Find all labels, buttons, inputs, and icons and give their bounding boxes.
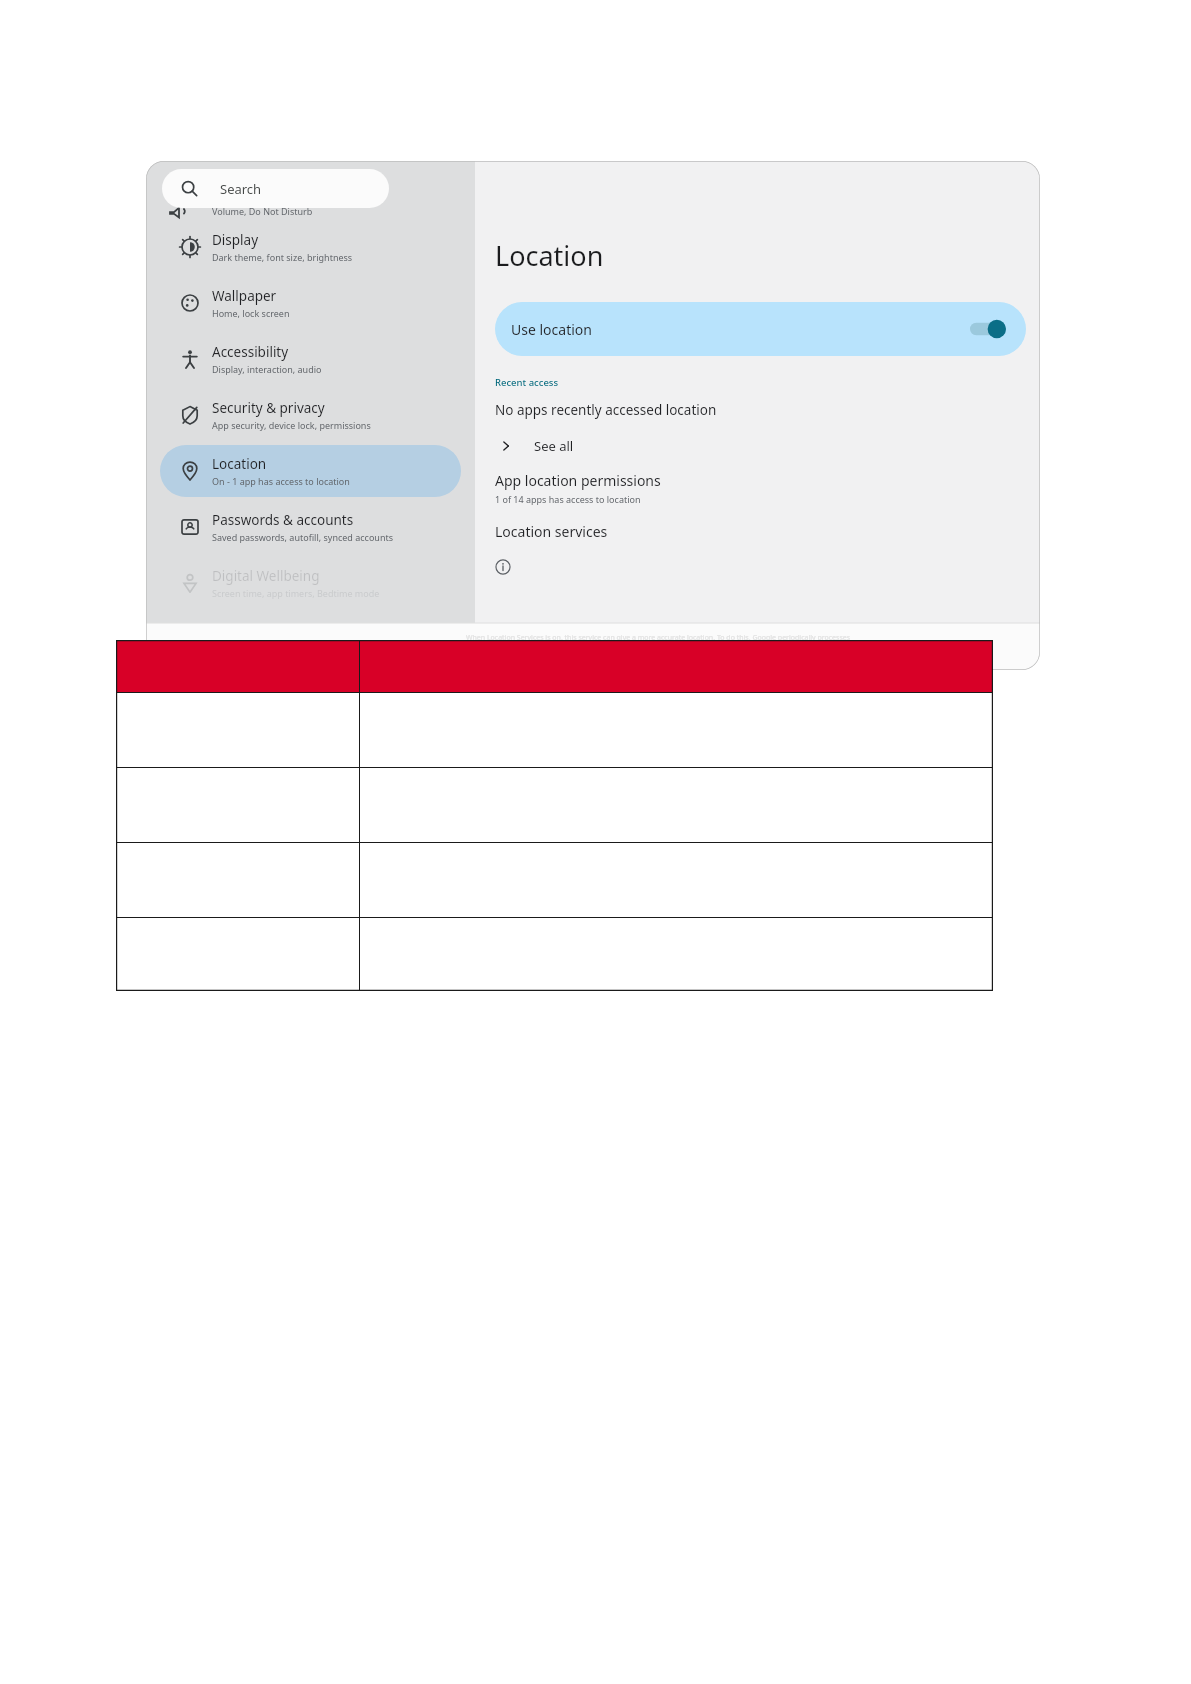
staticText: Volume, Do Not Disturb — [212, 205, 313, 217]
staticText: App security, device lock, permissions — [212, 419, 371, 431]
button[interactable]: Passwords & accounts — [160, 501, 461, 553]
button[interactable]: No apps recently accessed location — [495, 401, 1026, 419]
button[interactable]: Wallpaper — [160, 277, 461, 329]
button[interactable]: Recents — [594, 641, 614, 661]
button[interactable]: Accessibility — [160, 333, 461, 385]
staticText: Location — [212, 455, 267, 473]
staticText: Recent access — [495, 376, 559, 389]
button[interactable]: Information — [495, 559, 511, 575]
staticText: Display — [212, 231, 259, 249]
staticText: Digital Wellbeing — [212, 567, 320, 585]
button[interactable]: Home — [536, 641, 556, 661]
staticText: No apps recently accessed location — [495, 401, 717, 419]
staticText: Wallpaper — [212, 287, 277, 305]
staticText: 1 of 14 apps has access to location — [495, 493, 641, 505]
button[interactable] — [360, 693, 993, 767]
staticText: Search — [220, 180, 262, 198]
button[interactable] — [116, 640, 359, 692]
staticText: Dark theme, font size, brightness — [212, 251, 353, 263]
staticText: When Location Services is on, this servi… — [466, 633, 851, 643]
button[interactable] — [360, 768, 993, 842]
button[interactable] — [360, 843, 993, 917]
staticText: On - 1 app has access to location — [212, 475, 350, 487]
button[interactable] — [116, 768, 359, 842]
staticText: Passwords & accounts — [212, 511, 354, 529]
button[interactable] — [360, 918, 993, 991]
button[interactable]: See all — [495, 433, 1026, 459]
staticText: App location permissions — [495, 471, 661, 490]
button[interactable]: Location — [160, 445, 461, 497]
button[interactable] — [116, 843, 359, 917]
staticText: Screen time, app timers, Bedtime mode — [212, 587, 380, 599]
button[interactable]: Back — [478, 640, 500, 662]
staticText: Saved passwords, autofill, synced accoun… — [212, 531, 394, 543]
button[interactable]: Display — [160, 221, 461, 273]
button[interactable]: App location permissions — [495, 471, 1026, 505]
staticText: Display, interaction, audio — [212, 363, 322, 375]
staticText: Accessibility — [212, 343, 289, 361]
button[interactable]: Digital Wellbeing — [160, 557, 461, 609]
button[interactable] — [116, 693, 359, 767]
button[interactable]: Location services — [495, 522, 1026, 541]
staticText: Location — [495, 237, 604, 274]
button[interactable]: Volume, Do Not Disturb — [146, 193, 475, 219]
button[interactable]: Security & privacy — [160, 389, 461, 441]
button[interactable] — [116, 918, 359, 991]
staticText: Home, lock screen — [212, 307, 290, 319]
staticText: Location services — [495, 522, 608, 541]
staticText: Use location — [511, 320, 592, 339]
button[interactable] — [360, 640, 993, 692]
button[interactable]: Search — [162, 169, 389, 208]
staticText: See all — [534, 437, 574, 455]
staticText: Security & privacy — [212, 399, 325, 417]
button[interactable]: Use location — [495, 302, 1026, 356]
